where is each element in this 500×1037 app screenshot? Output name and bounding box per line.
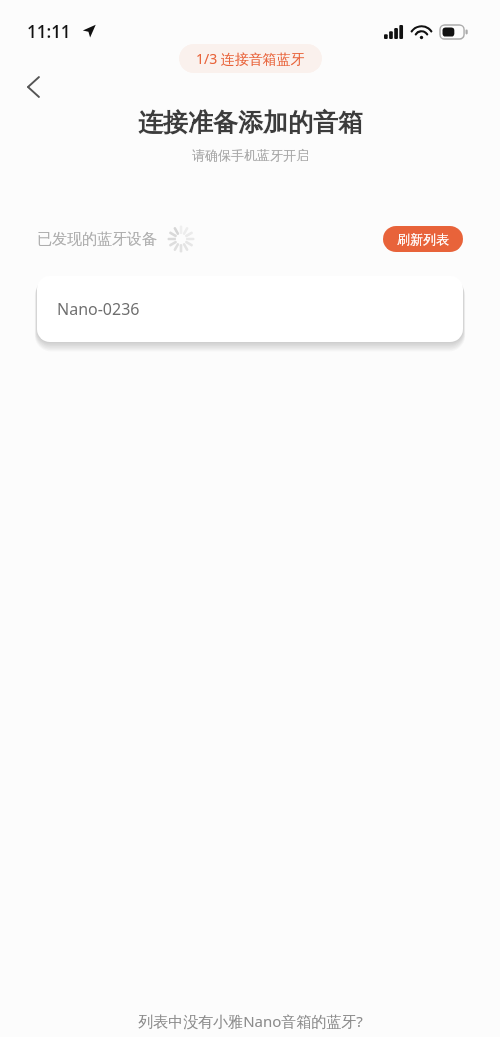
staticText: Nano-0236	[57, 298, 140, 320]
button[interactable]: 列表中没有小雅Nano音箱的蓝牙?	[126, 1008, 375, 1034]
staticText: 已发现的蓝牙设备	[37, 230, 157, 249]
button[interactable]: Nano-0236	[37, 276, 463, 342]
button[interactable]: 1/3 连接音箱蓝牙	[179, 44, 322, 73]
staticText: 请确保手机蓝牙开启	[192, 147, 309, 163]
staticText: 连接准备添加的音箱	[138, 107, 363, 138]
staticText: 1/3 连接音箱蓝牙	[196, 49, 305, 68]
button[interactable]: 刷新列表	[383, 226, 463, 252]
staticText: 刷新列表	[397, 231, 449, 247]
staticText: 列表中没有小雅Nano音箱的蓝牙?	[138, 1011, 363, 1031]
staticText: 11:11	[27, 20, 71, 43]
button[interactable]: Back	[10, 64, 56, 110]
